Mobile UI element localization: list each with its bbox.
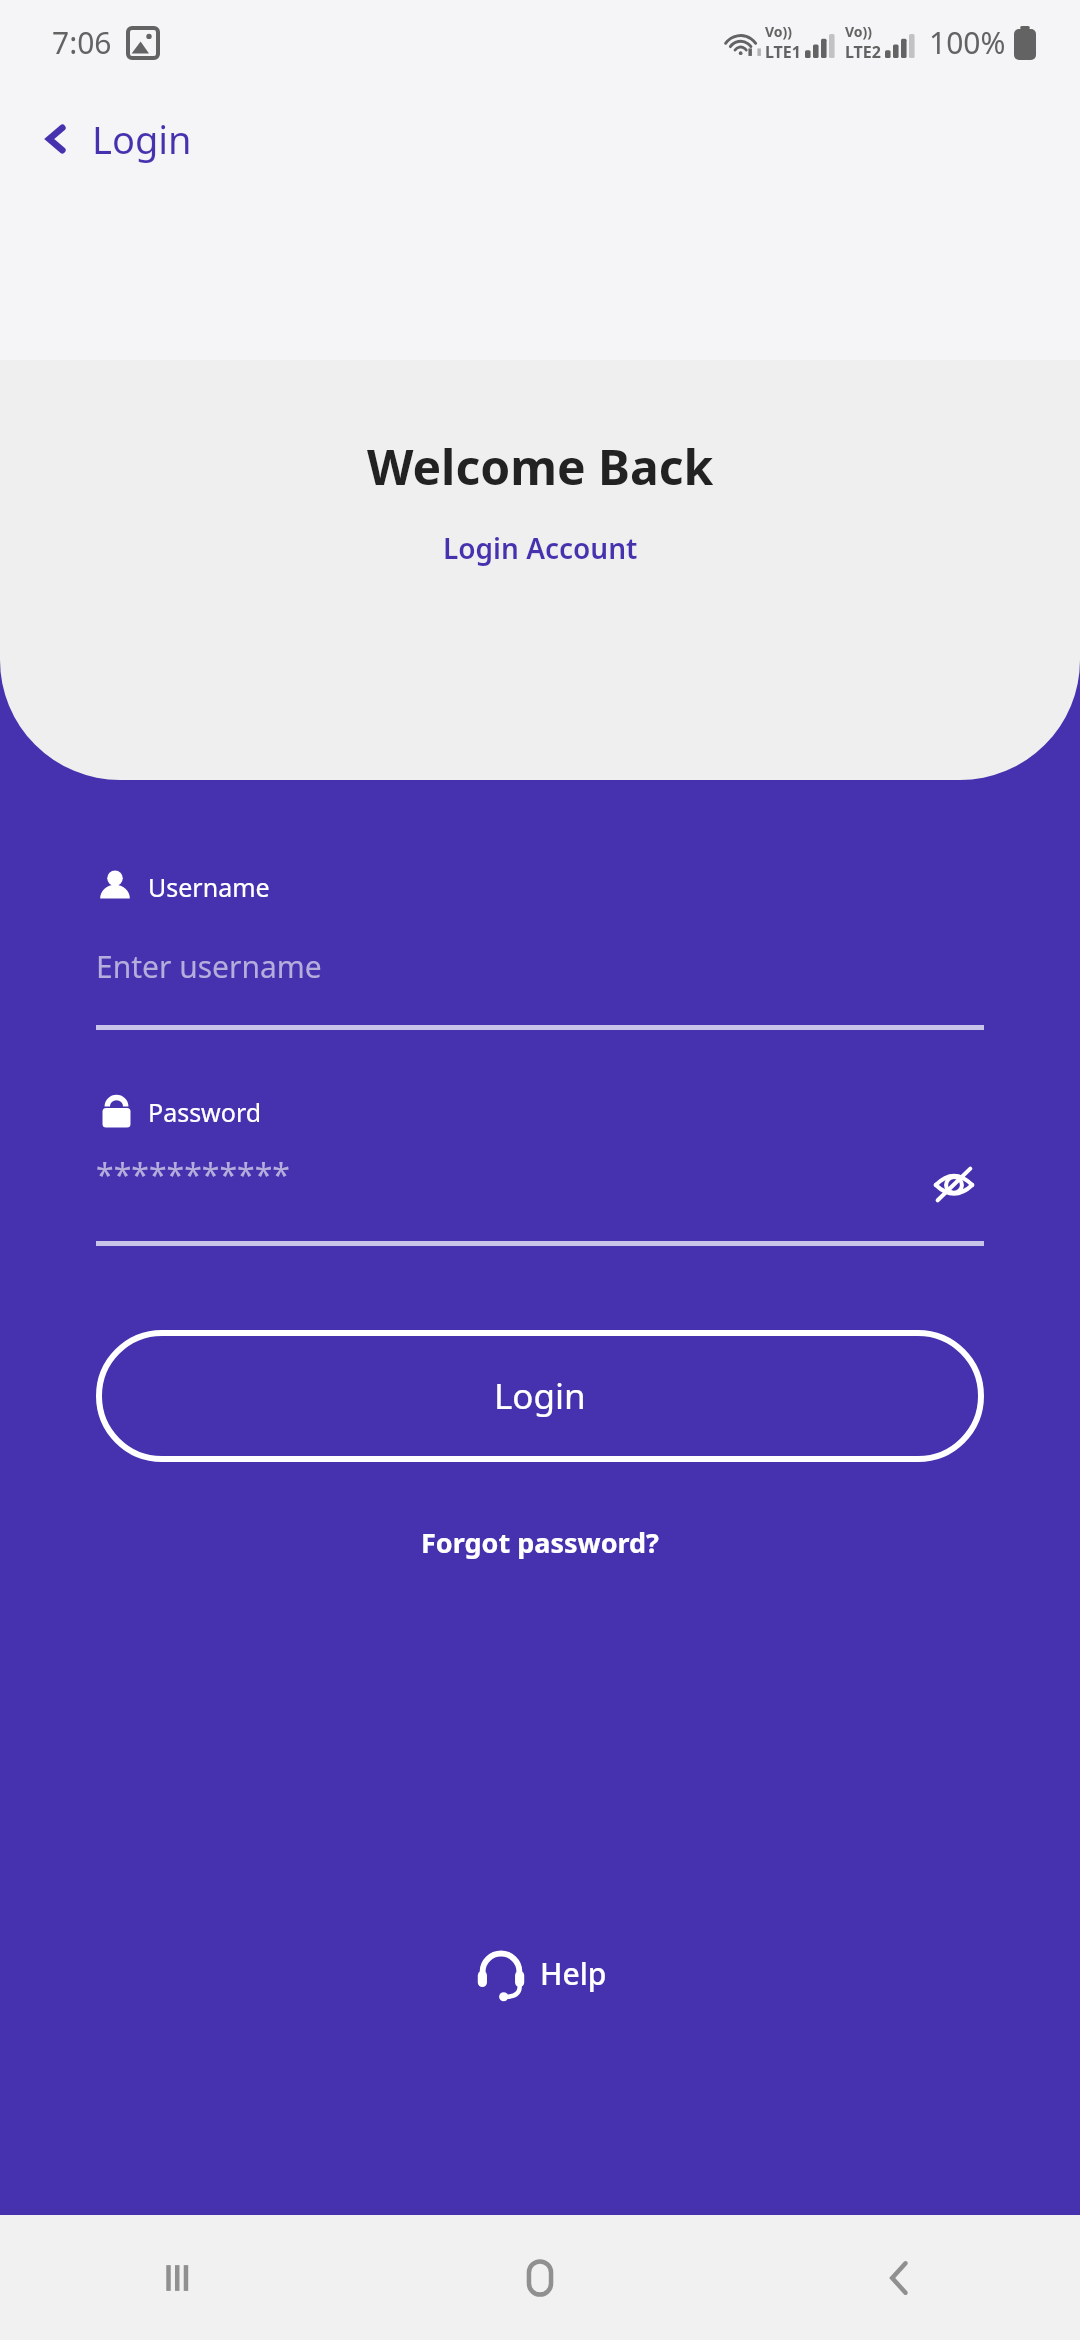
staticText: Help	[540, 1953, 607, 1994]
button[interactable]: Forgot password?	[411, 1514, 669, 1571]
staticText: 7:06	[52, 22, 112, 63]
staticText: Login Account	[443, 529, 638, 567]
staticText: LTE1	[765, 41, 801, 63]
button[interactable]: Home	[480, 2218, 600, 2338]
staticText: Username	[148, 870, 270, 904]
button[interactable]: Login	[96, 1330, 984, 1462]
staticText: Vo))	[845, 22, 873, 41]
button[interactable]: Recents	[120, 2218, 240, 2338]
staticText: Welcome Back	[367, 434, 714, 499]
button[interactable]: Enter username	[96, 946, 984, 987]
button[interactable]: Back	[26, 105, 202, 173]
staticText: Login	[92, 113, 192, 165]
button[interactable]: Show password	[924, 1154, 984, 1214]
button[interactable]: Back	[840, 2218, 960, 2338]
staticText: Password	[148, 1095, 262, 1129]
button[interactable]: Help	[462, 1938, 619, 2008]
staticText: Enter username	[96, 946, 322, 987]
staticText: Login	[494, 1372, 586, 1420]
staticText: ***********	[96, 1153, 290, 1197]
staticText: Vo))	[765, 22, 793, 41]
staticText: LTE2	[845, 41, 881, 63]
staticText: 100%	[929, 22, 1006, 63]
